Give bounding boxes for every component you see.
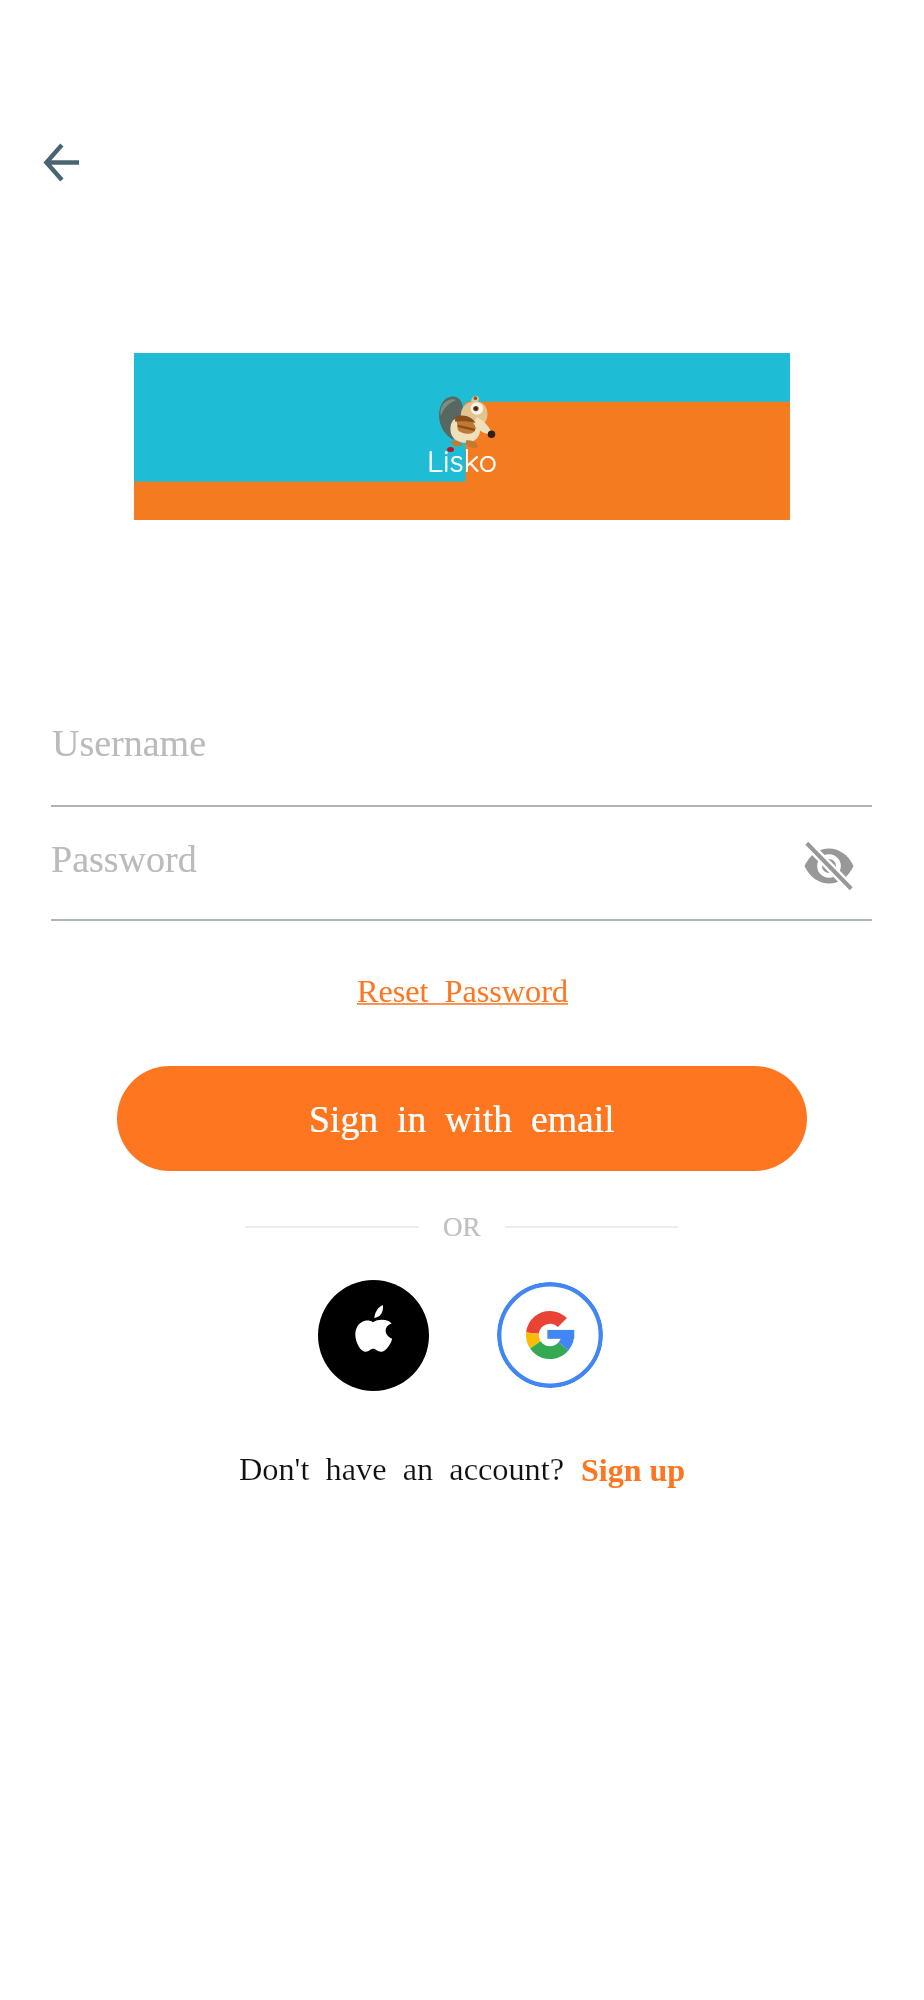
button[interactable]: Reset Password (357, 973, 568, 1009)
button[interactable]: Sign up (565, 1452, 686, 1487)
staticText: Username (52, 722, 207, 764)
button[interactable]: Back (17, 118, 105, 206)
staticText: Sign up (565, 1452, 686, 1487)
button[interactable]: Show password (788, 825, 870, 907)
button[interactable]: Sign in with Google (497, 1282, 603, 1388)
button[interactable]: Sign in with Apple (318, 1280, 429, 1391)
staticText: Sign in with email (309, 1098, 615, 1140)
button[interactable]: Sign in with email (117, 1066, 807, 1171)
staticText: Don't have an account? (239, 1451, 565, 1487)
staticText: Password (51, 838, 197, 880)
staticText: Lisko (427, 442, 497, 480)
staticText: OR (443, 1212, 481, 1242)
